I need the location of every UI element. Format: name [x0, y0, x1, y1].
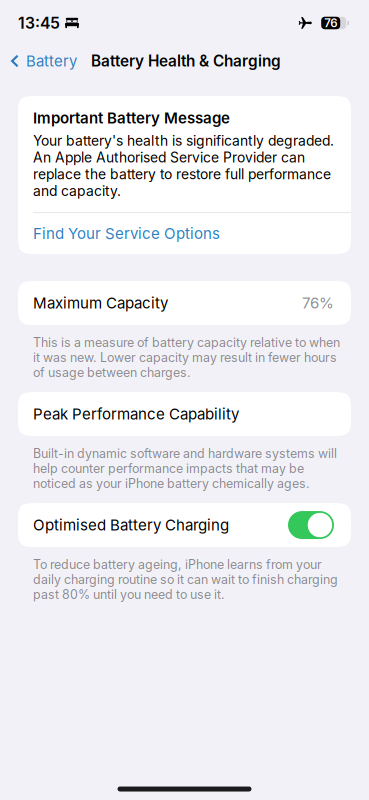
staticText: Your battery's health is significantly d…: [33, 132, 334, 199]
button[interactable]: Optimised Battery Charging: [0, 503, 369, 547]
staticText: Peak Performance Capability: [33, 405, 239, 423]
staticText: Battery: [26, 52, 77, 70]
staticText: To reduce battery ageing, iPhone learns …: [33, 557, 338, 602]
staticText: Important Battery Message: [33, 109, 230, 127]
staticText: Find Your Service Options: [33, 224, 220, 243]
staticText: Built-in dynamic software and hardware s…: [33, 446, 337, 491]
button[interactable]: Find Your Service Options: [18, 213, 351, 254]
staticText: 76: [324, 16, 337, 30]
staticText: This is a measure of battery capacity re…: [33, 335, 340, 380]
staticText: Battery Health & Charging: [91, 52, 281, 70]
button[interactable]: Battery: [0, 46, 82, 76]
staticText: 76%: [302, 294, 334, 312]
staticText: 13:45: [18, 13, 60, 32]
staticText: Optimised Battery Charging: [33, 516, 229, 534]
staticText: Maximum Capacity: [33, 294, 168, 312]
